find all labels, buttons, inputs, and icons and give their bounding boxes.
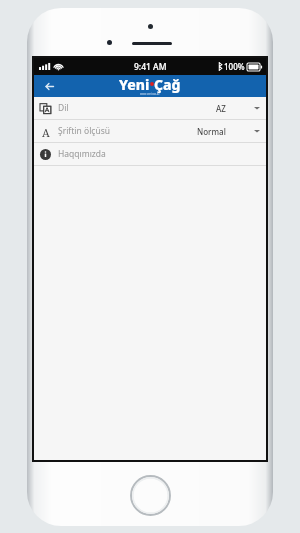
staticText: AZ <box>216 103 226 114</box>
button[interactable]: Back <box>34 75 64 97</box>
staticText: Haqqımızda <box>58 148 106 160</box>
staticText: A <box>42 125 50 138</box>
staticText: 100% <box>224 61 245 72</box>
staticText: Normal <box>197 126 226 137</box>
staticText: Dil <box>58 102 69 114</box>
button[interactable]: A <box>34 120 266 142</box>
staticText: Çağ <box>154 75 181 94</box>
button[interactable]: Home <box>130 475 171 516</box>
button[interactable]: Yeni <box>119 75 181 97</box>
staticText: www.yenicag.az <box>140 92 160 95</box>
staticText: Yeni <box>119 75 150 94</box>
button[interactable]: Haqqımızda <box>34 143 266 165</box>
staticText: Şriftin ölçüsü <box>58 125 111 137</box>
staticText: 9:41 AM <box>134 61 167 73</box>
button[interactable]: Dil <box>34 97 266 119</box>
